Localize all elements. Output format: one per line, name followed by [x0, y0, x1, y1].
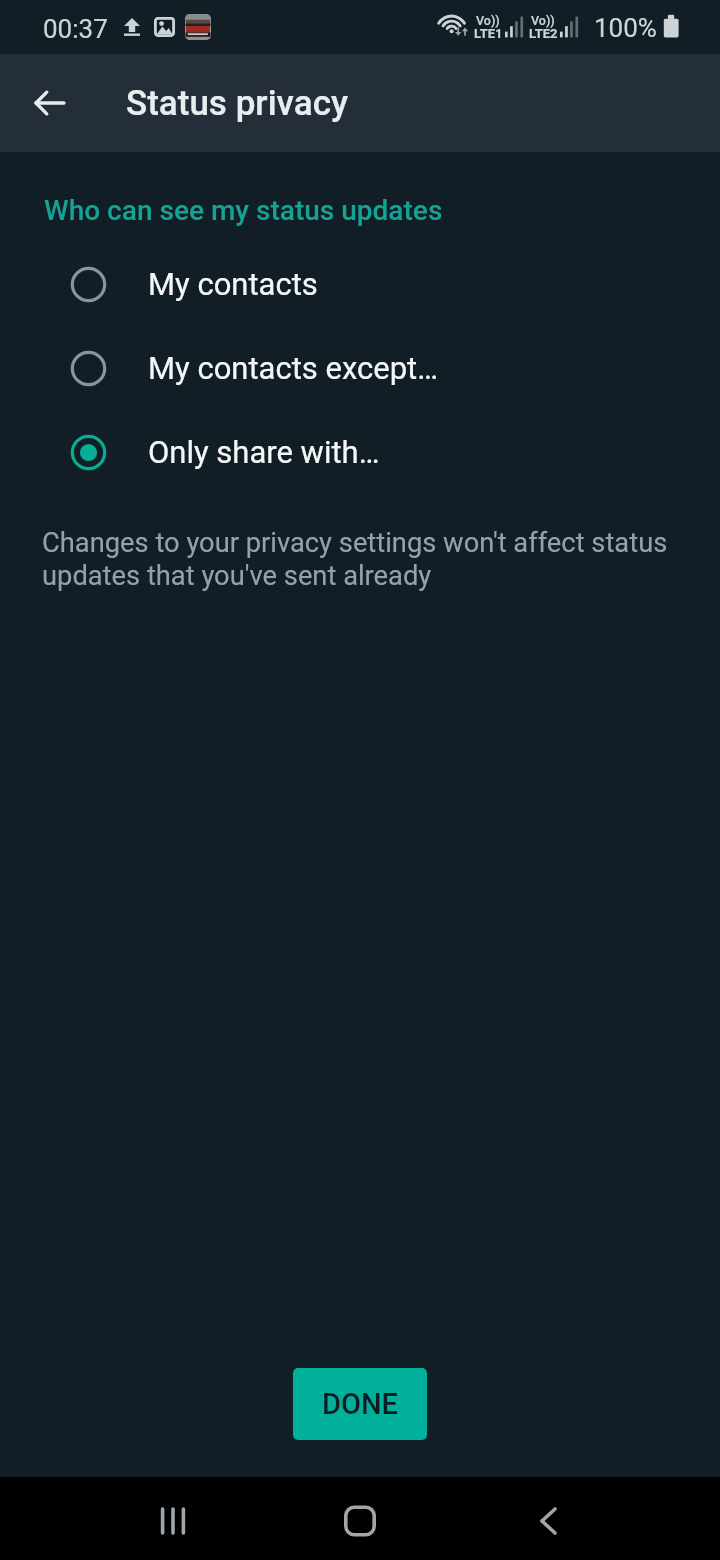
staticText: My contacts except…: [148, 350, 438, 386]
button[interactable]: Back: [19, 72, 81, 134]
button[interactable]: Home: [300, 1477, 420, 1560]
staticText: Only share with…: [148, 434, 380, 470]
staticText: DONE: [322, 1387, 398, 1421]
staticText: LTE2: [529, 26, 558, 41]
button[interactable]: Only share with…: [0, 410, 720, 494]
staticText: Changes to your privacy settings won't a…: [42, 527, 682, 591]
button[interactable]: DONE: [293, 1368, 427, 1440]
staticText: Status privacy: [126, 83, 349, 124]
staticText: LTE1: [474, 26, 503, 41]
button[interactable]: My contacts except…: [0, 326, 720, 410]
button[interactable]: Back: [487, 1477, 607, 1560]
button[interactable]: My contacts: [0, 242, 720, 326]
staticText: 100%: [594, 13, 657, 43]
staticText: Who can see my status updates: [44, 194, 443, 227]
staticText: My contacts: [148, 266, 318, 302]
staticText: Vo)): [476, 13, 500, 28]
button[interactable]: Recent apps: [112, 1477, 233, 1560]
staticText: 00:37: [43, 14, 108, 44]
staticText: Vo)): [531, 13, 555, 28]
